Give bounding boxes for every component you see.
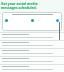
button[interactable] <box>2 12 62 31</box>
button[interactable] <box>2 34 62 39</box>
staticText: Get your social media messages scheduled… <box>1 1 38 10</box>
button[interactable] <box>2 58 62 63</box>
button[interactable] <box>2 66 62 71</box>
button[interactable] <box>2 42 62 47</box>
button[interactable] <box>2 50 62 55</box>
